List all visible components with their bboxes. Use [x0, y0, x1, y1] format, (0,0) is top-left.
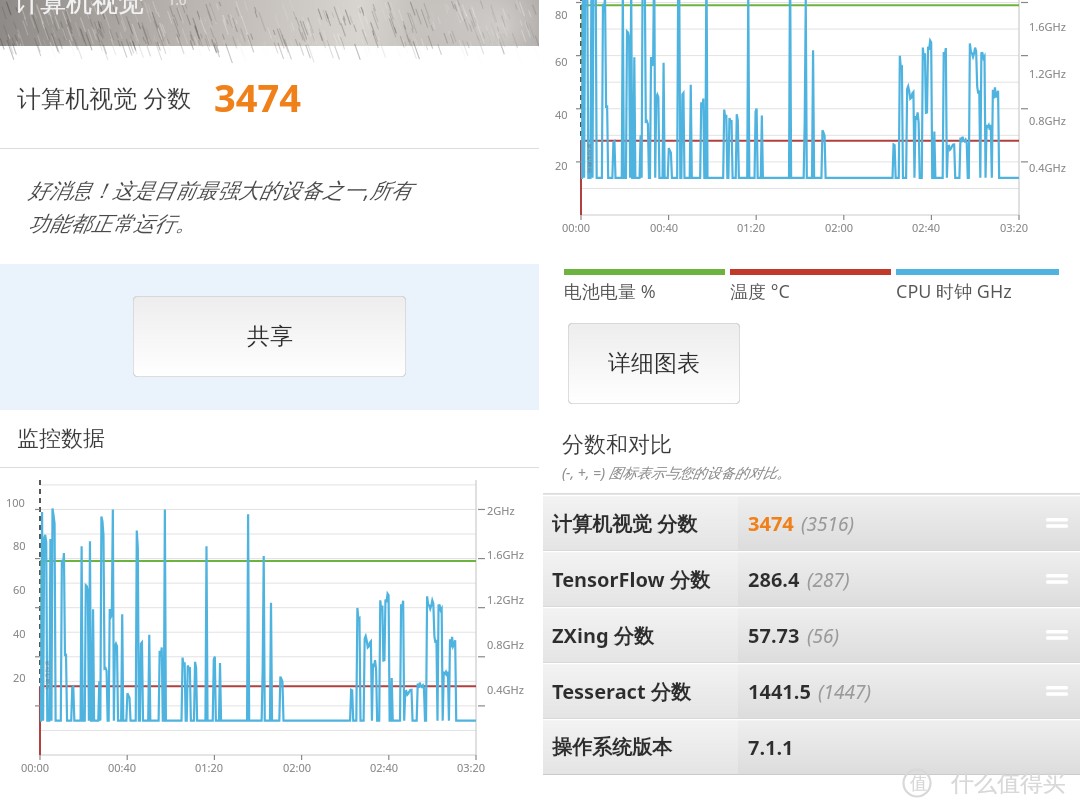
staticText: 40 [13, 626, 26, 641]
staticText: 02:40 [912, 220, 941, 235]
staticText: (287) [807, 567, 850, 593]
button[interactable]: 详细图表 [568, 323, 740, 404]
staticText: 共享 [247, 322, 293, 351]
button[interactable]: Tesseract 分数 [543, 663, 1080, 719]
staticText: 0.4GHz [487, 682, 524, 697]
staticText: 什么值得买 [951, 769, 1066, 798]
staticText: 详细图表 [608, 349, 700, 378]
button[interactable]: ZXing 分数 [543, 607, 1080, 663]
staticText: Tesseract 分数 [552, 678, 691, 705]
staticText: 温度 °C [730, 279, 790, 304]
button[interactable]: 计算机视觉 分数 [543, 495, 1080, 551]
staticText: 态 [587, 149, 592, 155]
staticText: 57.73 [748, 622, 800, 649]
staticText: 0.4GHz [1029, 160, 1066, 175]
staticText: 监控数据 [17, 425, 105, 453]
staticText: (1447) [818, 679, 871, 705]
button[interactable]: TensorFlow 分数 [543, 551, 1080, 607]
staticText: TensorFlow 分数 [552, 566, 710, 593]
staticText: 3474 [748, 510, 794, 537]
staticText: 00:40 [650, 220, 679, 235]
staticText: 60 [13, 582, 26, 597]
staticText: 1.2GHz [487, 592, 524, 607]
other: Equal to your device [1046, 683, 1068, 699]
staticText: 显 [45, 678, 50, 684]
staticText: 显 [587, 161, 592, 167]
staticText: 好消息！这是目前最强大的设备之一,所有 功能都正常运行。 [28, 176, 412, 237]
staticText: 值 [910, 773, 927, 794]
staticText: 电池电量 % [564, 279, 656, 304]
staticText: 20 [13, 670, 26, 685]
other: Equal to your device [1046, 515, 1068, 531]
staticText: 00:40 [108, 760, 137, 775]
staticText: 1.0 [168, 0, 187, 9]
staticText: 01:20 [195, 760, 224, 775]
staticText: 80 [555, 7, 568, 22]
staticText: 操作系统版本 [552, 735, 672, 760]
staticText: 1.2GHz [1029, 66, 1066, 81]
staticText: 计算机视觉 [14, 0, 144, 19]
staticText: 栏 [45, 672, 50, 678]
staticText: 示 [587, 167, 592, 173]
staticText: 20 [555, 158, 568, 173]
staticText: 40 [555, 107, 568, 122]
staticText: 1.6GHz [1029, 19, 1066, 34]
button[interactable]: 共享 [133, 296, 406, 377]
staticText: (3516) [801, 511, 854, 537]
button[interactable]: 操作系统版本 [543, 719, 1080, 775]
staticText: 计算机视觉 分数 [17, 81, 192, 114]
staticText: 00:00 [21, 760, 50, 775]
staticText: 286.4 [748, 566, 800, 593]
staticText: 03:20 [1000, 220, 1029, 235]
staticText: 状 [45, 660, 50, 666]
staticText: 状 [587, 143, 592, 149]
staticText: 02:00 [283, 760, 312, 775]
staticText: 02:00 [825, 220, 854, 235]
staticText: 栏 [587, 155, 592, 161]
staticText: 0.8GHz [487, 637, 524, 652]
staticText: 00:00 [562, 220, 591, 235]
staticText: (-, +, =) 图标表示与您的设备的对比。 [562, 463, 791, 482]
staticText: 01:20 [737, 220, 766, 235]
staticText: ZXing 分数 [552, 622, 654, 649]
staticText: 7.1.1 [748, 734, 794, 761]
other: Equal to your device [1046, 627, 1068, 643]
staticText: 态 [45, 666, 50, 672]
staticText: 分数和对比 [562, 431, 672, 459]
staticText: (56) [807, 623, 839, 649]
staticText: 60 [555, 54, 568, 69]
staticText: 0.8GHz [1029, 113, 1066, 128]
staticText: 计算机视觉 分数 [552, 510, 698, 537]
staticText: 02:40 [370, 760, 399, 775]
other: Equal to your device [1046, 571, 1068, 587]
staticText: 2GHz [487, 503, 515, 518]
staticText: 1.6GHz [487, 547, 524, 562]
staticText: 3474 [214, 71, 301, 123]
staticText: 100 [6, 495, 25, 510]
staticText: CPU 时钟 GHz [896, 279, 1012, 304]
staticText: 示 [45, 684, 50, 690]
staticText: 80 [13, 538, 26, 553]
staticText: 1441.5 [748, 678, 811, 705]
staticText: 03:20 [457, 760, 486, 775]
